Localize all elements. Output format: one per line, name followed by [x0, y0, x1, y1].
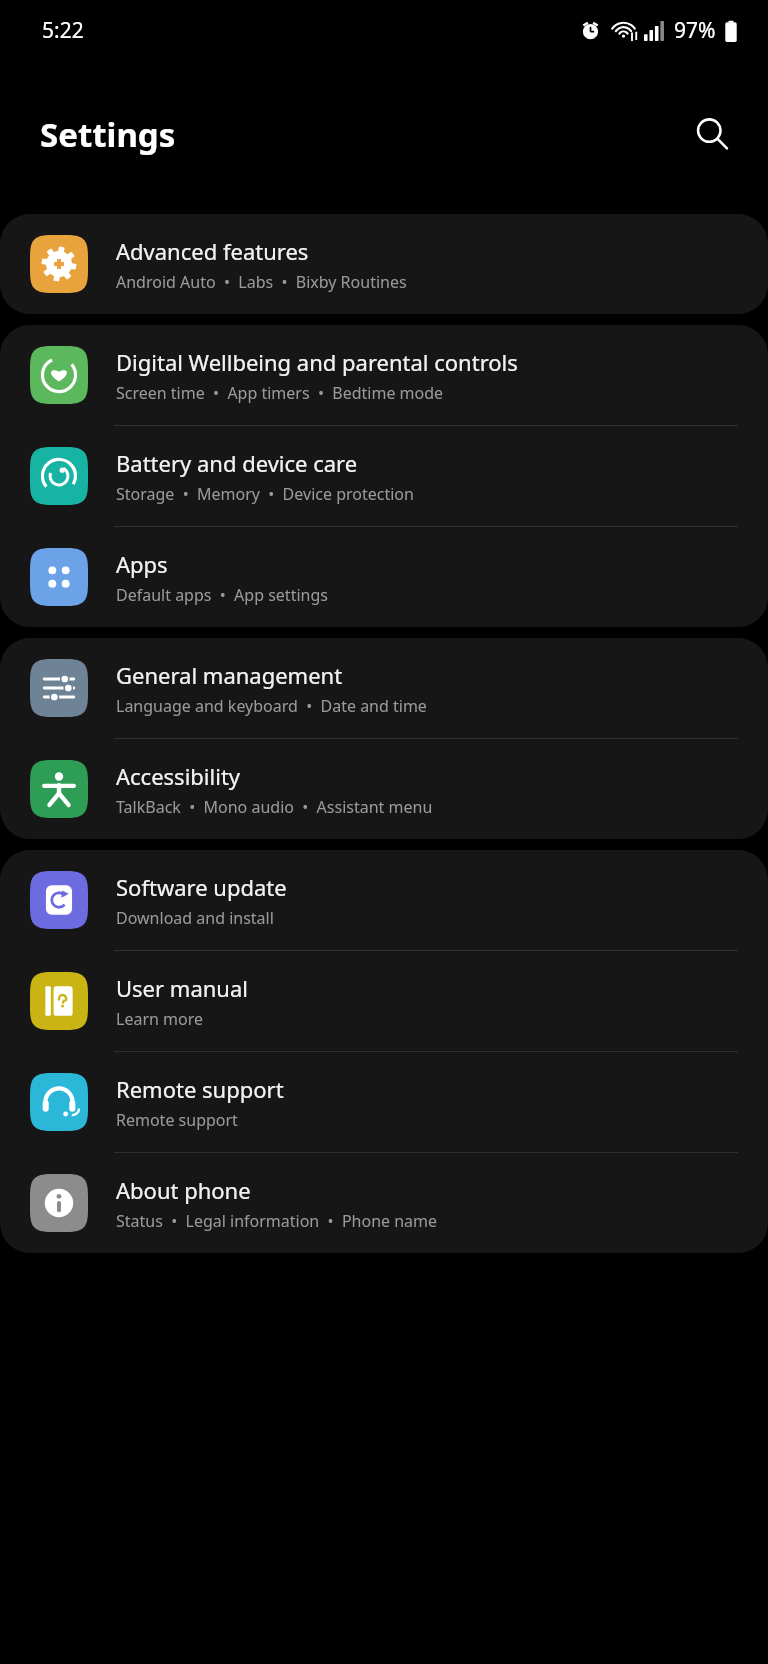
button[interactable]: About phone — [0, 1153, 768, 1253]
staticText: Battery and device care — [116, 448, 358, 478]
button[interactable]: Battery and device care — [0, 426, 768, 526]
staticText: Storage • Memory • Device protection — [116, 483, 414, 505]
button[interactable]: Advanced features — [0, 214, 768, 314]
staticText: Settings — [40, 112, 176, 157]
staticText: Screen time • App timers • Bedtime mode — [116, 382, 444, 404]
button[interactable]: Accessibility — [0, 739, 768, 839]
staticText: Learn more — [116, 1008, 203, 1030]
staticText: Android Auto • Labs • Bixby Routines — [116, 271, 407, 293]
staticText: Accessibility — [116, 761, 241, 791]
button[interactable]: User manual — [0, 951, 768, 1051]
staticText: Remote support — [116, 1109, 238, 1131]
staticText: General management — [116, 660, 343, 690]
button[interactable]: Apps — [0, 527, 768, 627]
staticText: 5:22 — [42, 16, 84, 45]
staticText: Digital Wellbeing and parental controls — [116, 347, 518, 377]
staticText: Status • Legal information • Phone name — [116, 1210, 438, 1232]
button[interactable]: Search — [684, 106, 740, 162]
staticText: Software update — [116, 872, 287, 902]
staticText: Default apps • App settings — [116, 584, 328, 606]
staticText: Language and keyboard • Date and time — [116, 695, 427, 717]
staticText: Advanced features — [116, 236, 309, 266]
button[interactable]: Software update — [0, 850, 768, 950]
button[interactable]: General management — [0, 638, 768, 738]
button[interactable]: Digital Wellbeing and parental controls — [0, 325, 768, 425]
staticText: TalkBack • Mono audio • Assistant menu — [116, 796, 433, 818]
staticText: User manual — [116, 973, 248, 1003]
staticText: Apps — [116, 549, 168, 579]
staticText: 97% — [674, 16, 716, 45]
staticText: Download and install — [116, 907, 274, 929]
staticText: About phone — [116, 1175, 251, 1205]
staticText: Remote support — [116, 1074, 284, 1104]
button[interactable]: Remote support — [0, 1052, 768, 1152]
